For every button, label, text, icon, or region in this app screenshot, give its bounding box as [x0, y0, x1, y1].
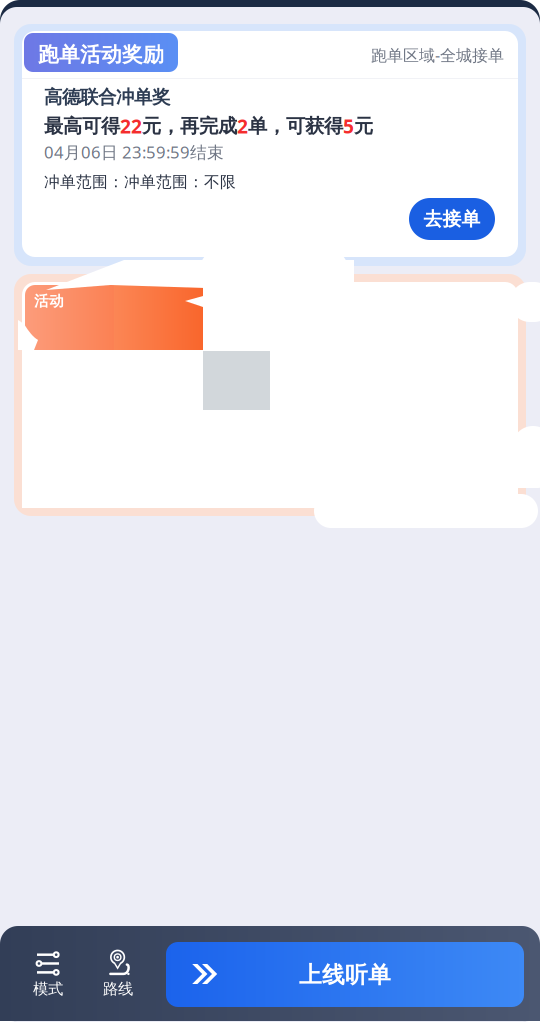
staticText: 元: [354, 114, 373, 138]
staticText: 单，可获得: [248, 114, 343, 138]
staticText: 跑单区域-全城接单: [371, 44, 504, 66]
staticText: 5: [343, 113, 354, 139]
staticText: 路线: [103, 979, 133, 999]
staticText: 冲单范围：冲单范围：不限: [44, 172, 236, 192]
button[interactable]: 模式: [18, 938, 80, 1014]
staticText: 活动: [34, 292, 64, 310]
staticText: 模式: [33, 979, 63, 999]
staticText: 04月06日 23:59:59结束: [44, 141, 224, 163]
staticText: 去接单: [423, 207, 480, 231]
staticText: 元，再完成: [142, 114, 237, 138]
staticText: 22: [120, 113, 142, 139]
staticText: 高德联合冲单奖: [44, 85, 170, 109]
staticText: 2: [237, 113, 248, 139]
button[interactable]: 上线听单: [166, 942, 524, 1007]
staticText: 跑单活动奖励: [38, 41, 164, 67]
button[interactable]: 路线: [88, 938, 150, 1014]
button[interactable]: 去接单: [409, 198, 495, 240]
staticText: 最高可得: [44, 114, 120, 138]
staticText: 上线听单: [299, 961, 391, 989]
